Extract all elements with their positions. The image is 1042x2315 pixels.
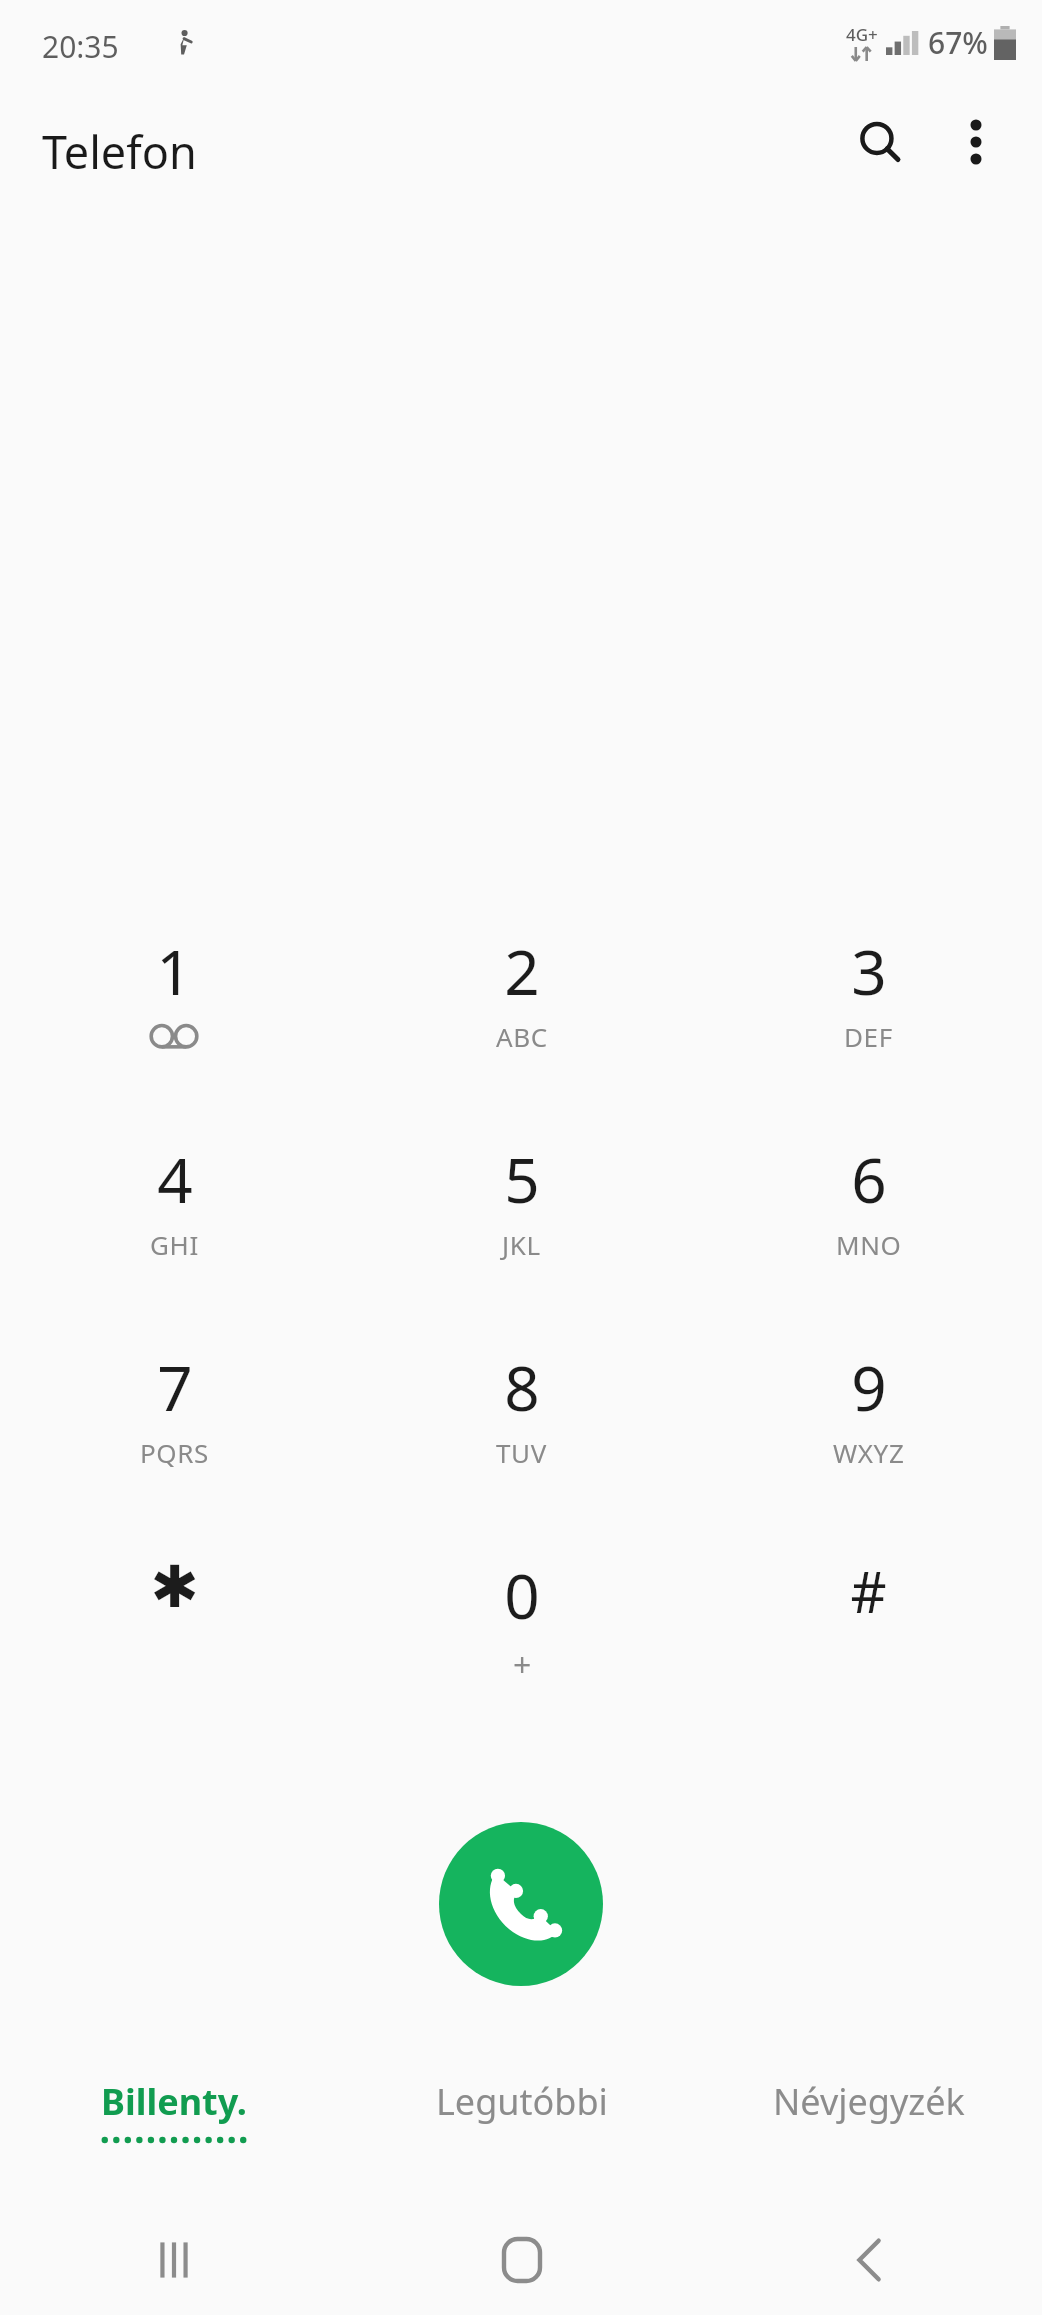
staticText: 4	[157, 1137, 193, 1221]
staticText: 67%	[928, 22, 988, 63]
button[interactable]: ✱	[0, 1539, 348, 1747]
button[interactable]: 0	[348, 1539, 695, 1747]
staticText: 20:35	[42, 26, 119, 67]
button[interactable]: Search	[832, 94, 928, 190]
button[interactable]: Recent apps	[0, 2205, 348, 2315]
staticText: Billenty.	[101, 2077, 247, 2126]
staticText: PQRS	[140, 1435, 209, 1470]
button[interactable]: Névjegyzék	[695, 2065, 1042, 2185]
button[interactable]: Billenty.	[0, 2065, 348, 2185]
staticText: Legutóbbi	[436, 2077, 608, 2126]
staticText: 9	[851, 1345, 887, 1429]
button[interactable]: 2	[348, 915, 695, 1123]
staticText: JKL	[502, 1227, 541, 1262]
staticText: 7	[157, 1345, 193, 1429]
button[interactable]: 1	[0, 915, 348, 1123]
staticText: 4G+	[846, 23, 878, 46]
button[interactable]: Legutóbbi	[348, 2065, 695, 2185]
button[interactable]: 8	[348, 1331, 695, 1539]
staticText: ✱	[150, 1553, 199, 1621]
button[interactable]: 6	[695, 1123, 1042, 1331]
button[interactable]: 9	[695, 1331, 1042, 1539]
staticText: 3	[851, 929, 887, 1013]
staticText: TUV	[496, 1435, 547, 1470]
button[interactable]: 7	[0, 1331, 348, 1539]
button[interactable]: Home	[348, 2205, 695, 2315]
button[interactable]: 3	[695, 915, 1042, 1123]
button[interactable]: More options	[928, 94, 1024, 190]
button[interactable]: 5	[348, 1123, 695, 1331]
staticText: 5	[504, 1137, 540, 1221]
staticText: 1	[156, 929, 192, 1013]
staticText: 6	[851, 1137, 887, 1221]
staticText: GHI	[150, 1227, 199, 1262]
staticText: Telefon	[42, 121, 197, 182]
staticText: WXYZ	[833, 1435, 905, 1470]
staticText: 2	[504, 929, 540, 1013]
button[interactable]: #	[695, 1539, 1042, 1747]
button[interactable]: 4	[0, 1123, 348, 1331]
staticText: DEF	[844, 1019, 893, 1054]
staticText: +	[513, 1643, 532, 1687]
staticText: MNO	[836, 1227, 902, 1262]
button[interactable]: Back	[695, 2205, 1042, 2315]
staticText: 0	[504, 1553, 540, 1637]
staticText: ABC	[496, 1019, 548, 1054]
staticText: 8	[504, 1345, 540, 1429]
button[interactable]: Call	[439, 1822, 603, 1986]
staticText: #	[850, 1553, 887, 1629]
staticText: Névjegyzék	[773, 2077, 965, 2126]
